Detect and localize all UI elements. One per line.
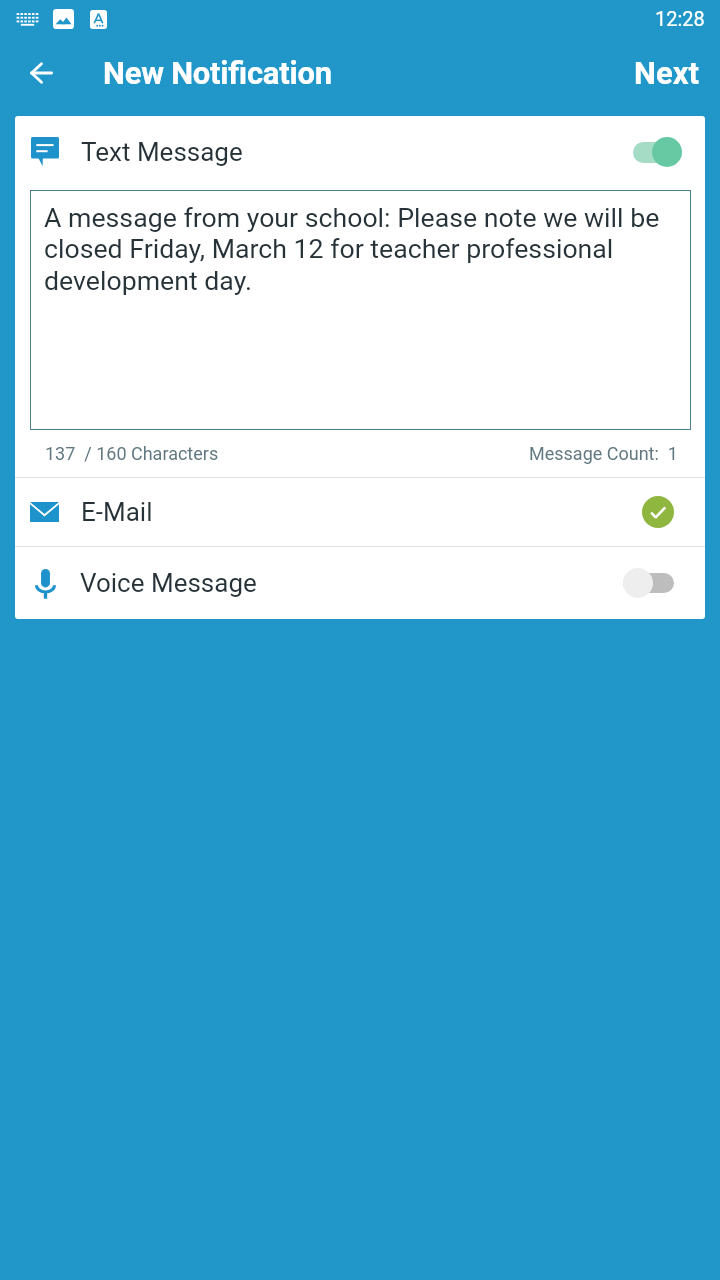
- staticText: A message from your school: Please note …: [44, 202, 681, 297]
- button[interactable]: Next: [618, 45, 720, 101]
- button[interactable]: E-Mail: [15, 478, 705, 546]
- button[interactable]: Text message enabled toggle: [623, 136, 682, 168]
- staticText: Voice Message: [80, 568, 257, 598]
- button[interactable]: Back: [13, 45, 69, 101]
- staticText: Next: [634, 55, 699, 91]
- button[interactable]: A message from your school: Please note …: [30, 190, 691, 430]
- staticText: 12:28: [655, 7, 705, 30]
- button[interactable]: Voice message disabled toggle: [623, 567, 682, 599]
- button[interactable]: Voice Message: [15, 547, 705, 619]
- staticText: E-Mail: [81, 497, 153, 527]
- staticText: Text Message: [81, 137, 243, 167]
- staticText: New Notification: [103, 55, 332, 91]
- staticText: Message Count: 1: [529, 443, 678, 464]
- staticText: 137 / 160 Characters: [45, 443, 219, 464]
- button[interactable]: Text Message: [15, 116, 705, 187]
